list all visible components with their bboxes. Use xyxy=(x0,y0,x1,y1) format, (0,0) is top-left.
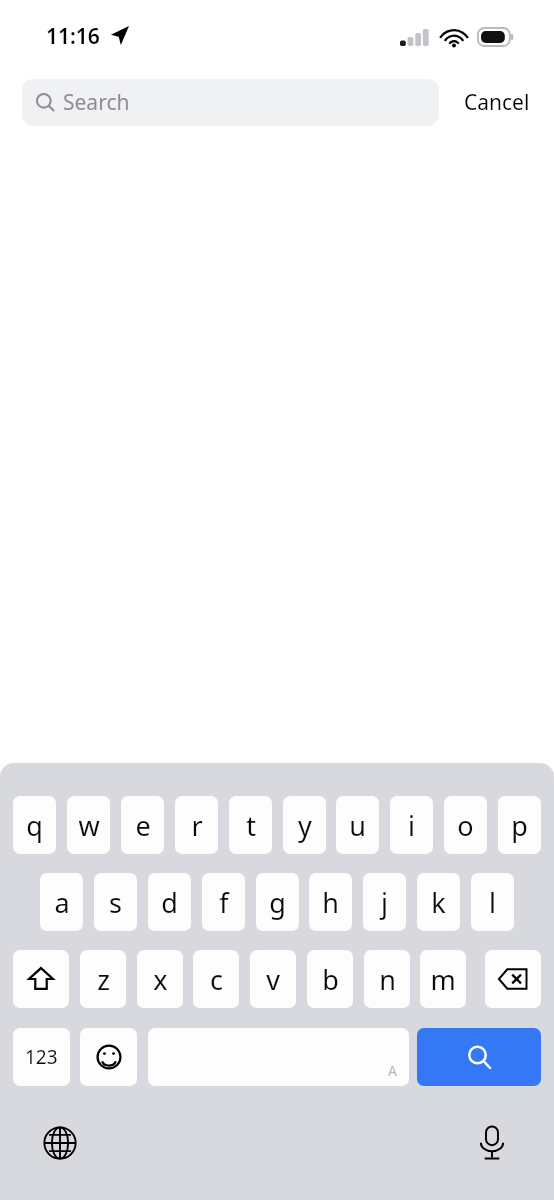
staticText: q xyxy=(26,807,43,844)
button[interactable]: t xyxy=(229,796,272,854)
staticText: 123 xyxy=(25,1044,58,1070)
button[interactable]: q xyxy=(13,796,56,854)
staticText: w xyxy=(78,807,100,844)
button[interactable]: b xyxy=(307,950,353,1008)
staticText: d xyxy=(161,884,178,921)
button[interactable]: Search xyxy=(417,1028,541,1086)
staticText: j xyxy=(381,884,388,921)
staticText: e xyxy=(135,807,151,844)
staticText: a xyxy=(54,884,70,921)
button[interactable]: Shift xyxy=(13,950,69,1008)
button[interactable]: Switch keyboard xyxy=(32,1115,88,1171)
button[interactable]: k xyxy=(417,873,460,931)
button[interactable]: s xyxy=(94,873,137,931)
staticText: Cancel xyxy=(464,88,530,117)
button[interactable]: a xyxy=(40,873,83,931)
staticText: Search xyxy=(63,88,130,117)
button[interactable]: l xyxy=(471,873,514,931)
staticText: n xyxy=(379,961,396,998)
staticText: 11:16 xyxy=(46,22,100,51)
button[interactable]: o xyxy=(444,796,487,854)
button[interactable]: j xyxy=(363,873,406,931)
staticText: g xyxy=(269,884,286,921)
staticText: m xyxy=(430,961,456,998)
button[interactable]: y xyxy=(283,796,326,854)
button[interactable]: c xyxy=(193,950,239,1008)
button[interactable]: h xyxy=(309,873,352,931)
staticText: v xyxy=(266,961,280,998)
button[interactable]: w xyxy=(67,796,110,854)
button[interactable]: r xyxy=(175,796,218,854)
staticText: A xyxy=(388,1061,397,1080)
button[interactable]: n xyxy=(364,950,410,1008)
button[interactable]: v xyxy=(250,950,296,1008)
staticText: b xyxy=(322,961,339,998)
button[interactable]: p xyxy=(498,796,541,854)
button[interactable]: Cancel xyxy=(439,79,554,126)
staticText: r xyxy=(191,807,203,844)
staticText: p xyxy=(511,807,528,844)
staticText: h xyxy=(322,884,339,921)
button[interactable]: e xyxy=(121,796,164,854)
button[interactable]: Backspace xyxy=(485,950,541,1008)
button[interactable]: m xyxy=(420,950,466,1008)
button[interactable]: u xyxy=(336,796,379,854)
button[interactable]: g xyxy=(256,873,299,931)
staticText: f xyxy=(219,884,229,921)
staticText: y xyxy=(298,807,312,844)
button[interactable]: x xyxy=(137,950,183,1008)
button[interactable]: i xyxy=(390,796,433,854)
button[interactable]: d xyxy=(148,873,191,931)
button[interactable]: Dictate xyxy=(464,1115,520,1171)
staticText: t xyxy=(246,807,256,844)
button[interactable]: 123 xyxy=(13,1028,70,1086)
staticText: l xyxy=(489,884,496,921)
staticText: u xyxy=(349,807,366,844)
button[interactable]: Space xyxy=(148,1028,409,1086)
staticText: c xyxy=(210,961,223,998)
button[interactable]: f xyxy=(202,873,245,931)
staticText: i xyxy=(408,807,415,844)
staticText: o xyxy=(457,807,474,844)
staticText: s xyxy=(109,884,122,921)
button[interactable]: Emoji xyxy=(80,1028,137,1086)
staticText: z xyxy=(97,961,110,998)
button[interactable]: Search xyxy=(22,79,439,126)
staticText: k xyxy=(431,884,446,921)
button[interactable]: z xyxy=(80,950,126,1008)
staticText: x xyxy=(153,961,168,998)
